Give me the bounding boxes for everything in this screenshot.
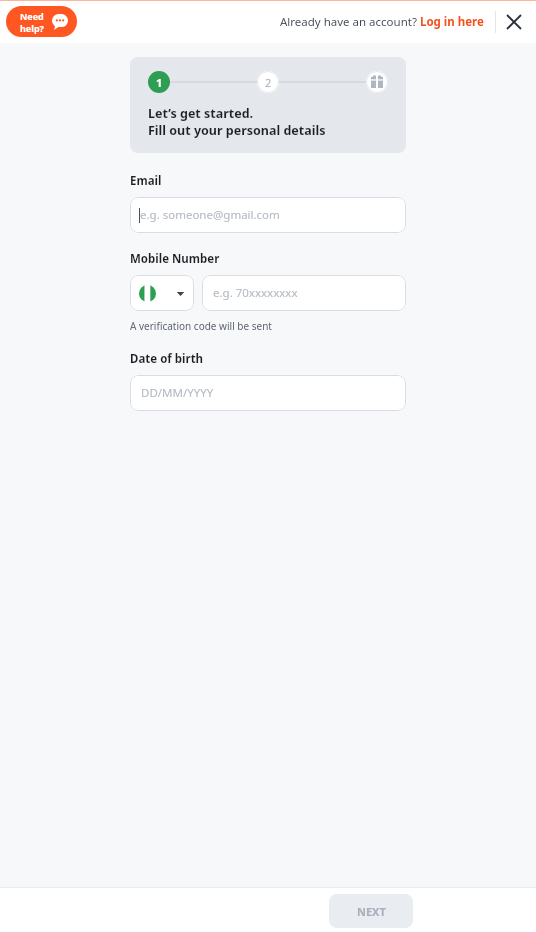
staticText: 2	[265, 75, 272, 90]
staticText: e.g. 70xxxxxxxx	[213, 285, 298, 301]
staticText: A verification code will be sent	[130, 319, 272, 333]
button[interactable]: e.g. someone@gmail.com	[130, 197, 406, 233]
button[interactable]: Select country code	[130, 275, 194, 311]
staticText: Already have an account?	[280, 14, 420, 30]
staticText: Let’s get started.	[148, 105, 254, 122]
button[interactable]: Close	[496, 4, 532, 40]
staticText: DD/MM/YYYY	[141, 385, 214, 401]
staticText: Need	[20, 10, 44, 22]
staticText: Fill out your personal details	[148, 122, 326, 139]
staticText: 1	[156, 75, 163, 90]
staticText: NEXT	[357, 904, 386, 919]
staticText: Date of birth	[130, 351, 204, 367]
button[interactable]: DD/MM/YYYY	[130, 375, 406, 411]
button[interactable]: e.g. 70xxxxxxxx	[202, 275, 406, 311]
button[interactable]: Need	[6, 6, 77, 37]
button[interactable]: 2	[257, 71, 279, 93]
staticText: e.g. someone@gmail.com	[140, 207, 280, 223]
button[interactable]: NEXT	[329, 894, 413, 928]
button[interactable]: 1	[148, 71, 170, 93]
staticText: Mobile Number	[130, 251, 220, 267]
button[interactable]: Already have an account?	[280, 14, 484, 30]
staticText: help?	[20, 22, 44, 34]
staticText: Email	[130, 173, 162, 189]
staticText: Log in here	[420, 14, 484, 30]
button[interactable]: Rewards	[366, 71, 388, 93]
